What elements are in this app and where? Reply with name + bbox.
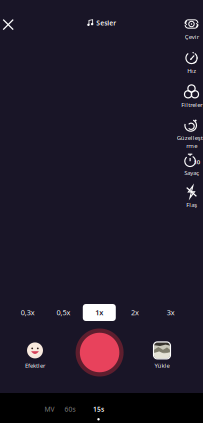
button[interactable]: MV: [38, 403, 60, 421]
button[interactable]: 2x: [118, 304, 151, 321]
button[interactable]: 1x: [83, 304, 116, 321]
staticText: 3x: [167, 307, 175, 317]
button[interactable]: Kapat: [0, 14, 19, 36]
staticText: MV: [44, 404, 54, 414]
button[interactable]: 15s: [87, 403, 109, 421]
staticText: 0,5x: [56, 307, 70, 317]
button[interactable]: Hız: [176, 51, 203, 85]
button[interactable]: Güzelleştirme: [176, 118, 203, 153]
staticText: Güzelleştirme: [176, 133, 203, 150]
staticText: Hız: [187, 66, 196, 75]
button[interactable]: 0,5x: [47, 304, 80, 321]
staticText: 15s: [93, 404, 104, 414]
staticText: 1x: [95, 307, 103, 317]
button[interactable]: 0,3x: [11, 304, 44, 321]
staticText: Flaş: [186, 200, 197, 209]
button[interactable]: Flaş: [176, 185, 203, 211]
staticText: Sayaç: [184, 168, 199, 177]
staticText: 2x: [131, 307, 139, 317]
staticText: Yükle: [154, 361, 169, 370]
button[interactable]: Yükle: [142, 342, 182, 370]
staticText: Sesler: [96, 18, 116, 28]
staticText: 60s: [64, 404, 75, 414]
button[interactable]: Çevir: [176, 17, 203, 51]
button[interactable]: Sesler: [83, 15, 120, 31]
staticText: 0,3x: [21, 307, 35, 317]
button[interactable]: Filtreler: [176, 85, 203, 118]
button[interactable]: Efektler: [15, 342, 55, 370]
staticText: Çevir: [184, 32, 198, 41]
button[interactable]: 10: [176, 153, 203, 185]
button[interactable]: 60s: [59, 403, 81, 421]
staticText: Filtreler: [181, 100, 202, 109]
button[interactable]: 3x: [154, 304, 187, 321]
button[interactable]: Kaydet: [76, 328, 124, 376]
staticText: 10: [194, 158, 200, 166]
staticText: Efektler: [25, 361, 45, 370]
